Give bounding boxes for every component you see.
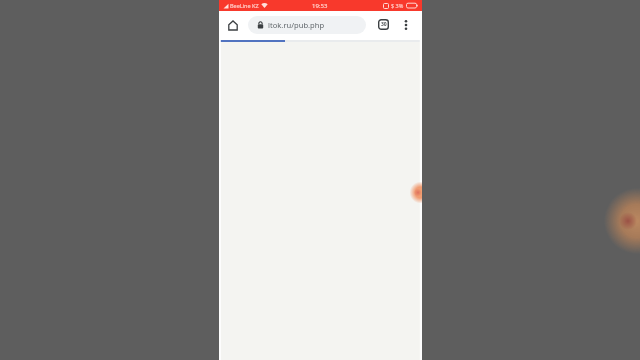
staticText: ltok.ru/pub.php (268, 20, 325, 30)
button[interactable]: ltok.ru/pub.php (248, 16, 366, 34)
staticText: BeeLine KZ (230, 2, 259, 9)
button[interactable] (400, 19, 412, 31)
staticText: 30 (381, 21, 387, 28)
staticText: $ 3% (391, 2, 404, 9)
staticText: 19:53 (312, 2, 328, 10)
button[interactable]: 30 (376, 17, 391, 32)
button[interactable] (225, 17, 241, 33)
